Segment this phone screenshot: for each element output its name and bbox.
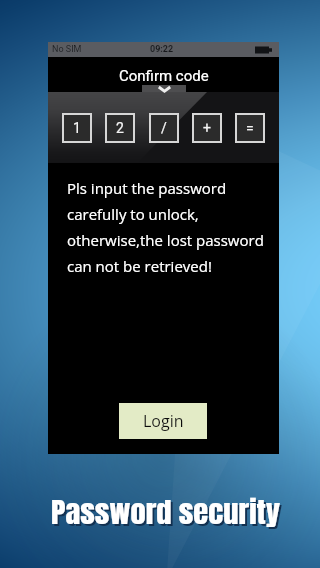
staticText: 2 <box>116 120 124 136</box>
staticText: + <box>203 120 211 136</box>
staticText: Confirm code <box>119 67 209 85</box>
staticText: Login <box>143 410 184 432</box>
button[interactable] <box>142 85 186 92</box>
staticText: Pls input the password <box>67 178 227 198</box>
button[interactable]: + <box>192 113 222 143</box>
button[interactable]: 1 <box>62 113 92 143</box>
staticText: otherwise,the lost password <box>67 230 264 250</box>
button[interactable]: Login <box>119 403 207 439</box>
staticText: 09:22 <box>150 44 174 55</box>
staticText: Password security <box>51 491 280 533</box>
staticText: can not be retrieved! <box>67 256 212 276</box>
staticText: = <box>246 120 254 136</box>
staticText: 1 <box>73 120 81 136</box>
button[interactable]: / <box>149 113 179 143</box>
staticText: carefully to unlock, <box>67 204 199 224</box>
staticText: Password security <box>53 493 282 535</box>
button[interactable]: 2 <box>105 113 135 143</box>
staticText: / <box>161 120 167 136</box>
staticText: No SIM <box>52 44 82 55</box>
button[interactable]: = <box>235 113 265 143</box>
